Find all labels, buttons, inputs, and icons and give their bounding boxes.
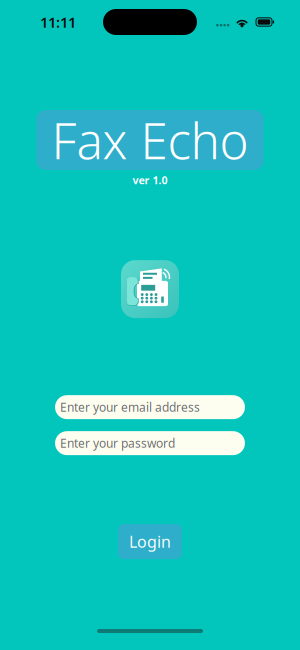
staticText: ver 1.0 xyxy=(132,173,167,187)
button[interactable]: Enter your email address xyxy=(55,395,245,419)
staticText: Login xyxy=(129,531,171,552)
staticText: Enter your email address xyxy=(60,399,200,415)
staticText: 11:11 xyxy=(40,12,76,32)
button[interactable]: Enter your password xyxy=(55,431,245,455)
staticText: Fax Echo xyxy=(51,107,248,173)
button[interactable]: Login xyxy=(118,524,182,559)
staticText: Enter your password xyxy=(60,435,175,451)
